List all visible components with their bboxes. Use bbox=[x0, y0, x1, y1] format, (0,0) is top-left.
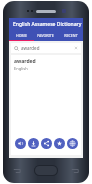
button[interactable]: FAVORITE bbox=[33, 31, 58, 40]
button[interactable]: Share bbox=[41, 138, 52, 149]
staticText: awarded bbox=[21, 45, 74, 51]
button[interactable]: HOME bbox=[9, 31, 33, 40]
button[interactable]: Download bbox=[28, 138, 39, 149]
other: Search bbox=[14, 46, 19, 51]
staticText: RECENT bbox=[64, 33, 78, 38]
button[interactable]: RECENT bbox=[58, 31, 83, 40]
button[interactable]: Favorite bbox=[54, 138, 65, 149]
button[interactable]: awarded bbox=[11, 55, 81, 71]
staticText: HOME bbox=[16, 33, 27, 38]
staticText: English bbox=[14, 66, 28, 71]
staticText: English Assamese Dictionary bbox=[13, 21, 82, 28]
staticText: FAVORITE bbox=[37, 33, 54, 38]
staticText: awarded bbox=[14, 58, 36, 65]
button[interactable]: Web search bbox=[67, 138, 78, 149]
button[interactable]: Pronounce bbox=[15, 138, 26, 149]
other: Clear bbox=[74, 46, 78, 50]
button[interactable]: Search bbox=[11, 43, 81, 53]
